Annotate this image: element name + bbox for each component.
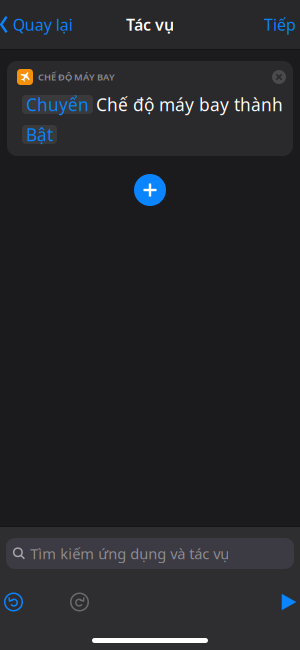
button[interactable]: Làm lại <box>66 588 93 615</box>
button[interactable]: Hoàn tác <box>0 588 27 615</box>
button[interactable]: Quay lại <box>0 8 79 41</box>
button[interactable]: Xoá tác vụ <box>272 70 286 84</box>
staticText: Chế độ máy bay thành <box>96 93 283 116</box>
staticText: Chuyển <box>26 93 89 116</box>
staticText: CHẾ ĐỘ MÁY BAY <box>38 71 115 83</box>
button[interactable]: Chạy phím tắt <box>278 591 300 613</box>
staticText: Tìm kiếm ứng dụng và tác vụ <box>30 544 229 563</box>
button[interactable]: Tiếp <box>256 8 300 41</box>
staticText: Tác vụ <box>126 14 174 35</box>
staticText: Bật <box>26 123 53 146</box>
button[interactable]: Thêm tác vụ <box>134 174 166 206</box>
staticText: Tiếp <box>264 14 296 35</box>
staticText: Quay lại <box>13 14 73 35</box>
button[interactable]: Tìm kiếm ứng dụng và tác vụ <box>6 538 294 569</box>
